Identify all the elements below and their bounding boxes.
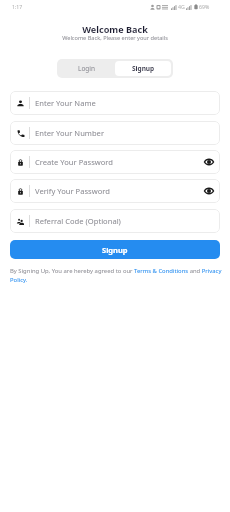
button[interactable]: Enter Your Number bbox=[10, 121, 220, 145]
button[interactable]: Show password bbox=[201, 183, 217, 199]
staticText: Referral Code (Optional) bbox=[35, 216, 121, 226]
staticText: Signup bbox=[102, 245, 128, 255]
button[interactable]: Verify Your Password bbox=[10, 179, 220, 203]
staticText: 4G bbox=[178, 3, 185, 10]
button[interactable]: Signup bbox=[10, 240, 220, 259]
staticText: Enter Your Name bbox=[35, 98, 96, 108]
button[interactable]: By Signing Up, You are hereby agreed to … bbox=[10, 267, 223, 283]
staticText: By Signing Up, You are hereby agreed to … bbox=[10, 267, 223, 283]
button[interactable]: Enter Your Name bbox=[10, 91, 220, 115]
staticText: 1:17 bbox=[12, 3, 23, 10]
staticText: Signup bbox=[132, 64, 155, 73]
staticText: Verify Your Password bbox=[35, 186, 110, 196]
staticText: Welcome Back, Please enter your details bbox=[0, 34, 230, 42]
button[interactable]: Show password bbox=[201, 154, 217, 170]
button[interactable]: Signup bbox=[115, 61, 171, 76]
button[interactable]: Referral Code (Optional) bbox=[10, 209, 220, 233]
staticText: Welcome Back bbox=[0, 23, 230, 35]
button[interactable]: Login bbox=[59, 61, 115, 76]
staticText: 69% bbox=[199, 3, 210, 10]
staticText: Create Your Password bbox=[35, 157, 113, 167]
staticText: Login bbox=[78, 64, 96, 73]
button[interactable]: Create Your Password bbox=[10, 150, 220, 174]
staticText: Enter Your Number bbox=[35, 128, 105, 138]
